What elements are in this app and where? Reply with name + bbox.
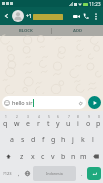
- button[interactable]: Shift: [0, 148, 16, 165]
- staticText: c: [41, 152, 45, 162]
- button[interactable]: ADD: [52, 25, 103, 36]
- staticText: y: [56, 119, 60, 129]
- staticText: BLOCK: [19, 28, 33, 34]
- staticText: k: [81, 135, 85, 145]
- staticText: ADD: [73, 28, 83, 34]
- button[interactable]: f: [38, 131, 48, 148]
- staticText: v: [51, 152, 55, 162]
- button[interactable]: 8: [73, 113, 83, 131]
- button[interactable]: s: [17, 131, 28, 148]
- staticText: j: [72, 135, 74, 145]
- staticText: 3: [27, 115, 29, 119]
- staticText: h: [61, 135, 66, 145]
- staticText: ,: [18, 170, 20, 177]
- staticText: s: [21, 135, 25, 145]
- button[interactable]: Back: [2, 11, 12, 21]
- button[interactable]: 7: [63, 113, 73, 131]
- button[interactable]: More options: [91, 8, 101, 24]
- staticText: z: [20, 152, 24, 162]
- button[interactable]: Attach: [76, 99, 84, 107]
- button[interactable]: 3: [22, 113, 33, 131]
- button[interactable]: ?123: [1, 166, 14, 181]
- staticText: u: [66, 119, 71, 129]
- button[interactable]: Call: [81, 8, 91, 24]
- staticText: 9: [88, 115, 90, 119]
- staticText: +1: [26, 13, 32, 20]
- button[interactable]: hello sir: [4, 96, 84, 109]
- button[interactable]: h: [58, 131, 68, 148]
- staticText: q: [3, 119, 8, 129]
- staticText: b: [61, 152, 66, 162]
- staticText: 2: [16, 115, 18, 119]
- staticText: Indonesia: [46, 171, 63, 176]
- staticText: p: [96, 119, 101, 129]
- button[interactable]: 0: [93, 113, 103, 131]
- button[interactable]: Backspace: [88, 148, 103, 165]
- button[interactable]: 1: [0, 113, 11, 131]
- button[interactable]: a: [6, 131, 17, 148]
- staticText: 4: [38, 115, 40, 119]
- staticText: r: [37, 119, 40, 129]
- button[interactable]: n: [68, 148, 78, 165]
- staticText: d: [31, 135, 36, 145]
- staticText: 7: [68, 115, 70, 119]
- button[interactable]: Enter: [87, 167, 101, 180]
- button[interactable]: .: [77, 166, 86, 181]
- staticText: .: [81, 170, 83, 177]
- staticText: t: [47, 119, 50, 129]
- button[interactable]: 4: [33, 113, 43, 131]
- button[interactable]: Change language: [23, 166, 32, 181]
- staticText: 11:23: [89, 1, 101, 7]
- staticText: 0: [98, 115, 100, 119]
- button[interactable]: 5: [43, 113, 53, 131]
- button[interactable]: b: [58, 148, 68, 165]
- staticText: l: [92, 135, 94, 145]
- staticText: w: [14, 119, 20, 129]
- button[interactable]: l: [88, 131, 98, 148]
- staticText: hello sir: [12, 99, 33, 106]
- button[interactable]: x: [27, 148, 38, 165]
- staticText: 5: [48, 115, 50, 119]
- button[interactable]: 2: [11, 113, 22, 131]
- staticText: 6: [57, 115, 59, 119]
- button[interactable]: Video call: [71, 8, 81, 24]
- button[interactable]: Contact photo: [12, 10, 24, 22]
- button[interactable]: m: [78, 148, 88, 165]
- button[interactable]: +1: [26, 13, 71, 20]
- button[interactable]: k: [78, 131, 88, 148]
- staticText: 8: [77, 115, 79, 119]
- button[interactable]: 9: [83, 113, 93, 131]
- staticText: o: [86, 119, 91, 129]
- staticText: m: [80, 152, 87, 162]
- staticText: g: [51, 135, 56, 145]
- button[interactable]: Indonesia: [33, 166, 76, 181]
- staticText: f: [42, 135, 45, 145]
- staticText: x: [31, 152, 35, 162]
- button[interactable]: c: [38, 148, 48, 165]
- button[interactable]: j: [68, 131, 78, 148]
- button[interactable]: ,: [14, 166, 23, 181]
- staticText: ?123: [3, 171, 12, 176]
- staticText: a: [10, 135, 14, 145]
- button[interactable]: v: [48, 148, 58, 165]
- button[interactable]: BLOCK: [0, 25, 51, 36]
- button[interactable]: 6: [53, 113, 63, 131]
- staticText: n: [71, 152, 76, 162]
- staticText: i: [77, 119, 79, 129]
- staticText: 1: [5, 115, 7, 119]
- button[interactable]: Send: [88, 96, 101, 109]
- staticText: e: [26, 119, 30, 129]
- button[interactable]: g: [48, 131, 58, 148]
- button[interactable]: z: [16, 148, 27, 165]
- button[interactable]: d: [28, 131, 38, 148]
